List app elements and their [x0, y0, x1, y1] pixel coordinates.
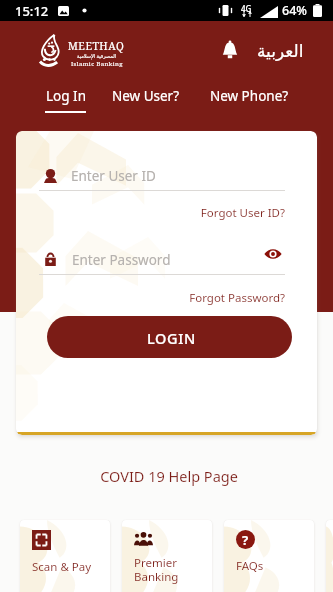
button[interactable]: COVID 19 Help Page: [0, 461, 333, 491]
button[interactable]: العربية: [252, 34, 308, 68]
button[interactable]: ?: [326, 520, 333, 592]
staticText: Forgot Password?: [176, 290, 285, 306]
staticText: Log In: [46, 87, 86, 105]
staticText: Islamic Banking: [71, 60, 123, 68]
staticText: MEETHAQ: [68, 39, 125, 53]
staticText: المصرفية الإسلامية: [77, 53, 117, 60]
staticText: New User?: [106, 87, 185, 105]
button[interactable]: New User?: [106, 87, 185, 109]
staticText: 15:12: [15, 2, 49, 20]
button[interactable]: Forgot User ID?: [186, 205, 285, 221]
staticText: Premier Banking: [134, 555, 179, 584]
staticText: 4G: [241, 3, 252, 14]
button[interactable]: Premier Banking: [122, 520, 212, 592]
staticText: New Phone?: [203, 87, 295, 105]
staticText: LOGIN: [147, 328, 196, 348]
staticText: ?: [242, 531, 249, 549]
button[interactable]: [39, 245, 285, 274]
staticText: Scan & Pay: [32, 559, 92, 575]
staticText: Enter User ID: [71, 167, 156, 185]
button[interactable]: ?: [224, 520, 314, 592]
staticText: Enter Password: [72, 251, 171, 269]
staticText: FAQs: [236, 558, 264, 574]
staticText: العربية: [257, 41, 304, 61]
staticText: COVID 19 Help Page: [100, 466, 238, 486]
button[interactable]: LOGIN: [47, 316, 292, 358]
button[interactable]: Show password: [260, 241, 286, 267]
button[interactable]: New Phone?: [203, 87, 295, 109]
button[interactable]: Log In: [37, 82, 94, 114]
button[interactable]: [39, 161, 285, 190]
staticText: Forgot User ID?: [186, 205, 285, 221]
button[interactable]: Forgot Password?: [176, 290, 285, 306]
button[interactable]: Scan & Pay: [20, 520, 110, 592]
button[interactable]: Notifications: [214, 33, 246, 65]
staticText: 64%: [282, 2, 307, 19]
